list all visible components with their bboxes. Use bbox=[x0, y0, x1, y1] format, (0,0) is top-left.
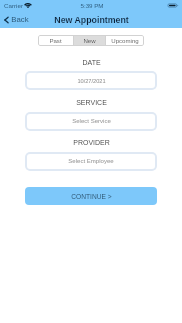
button[interactable]: CONTINUE > bbox=[25, 187, 157, 205]
staticText: New bbox=[83, 37, 96, 44]
staticText: Past bbox=[49, 37, 62, 44]
staticText: Carrier bbox=[4, 2, 23, 9]
button[interactable]: Back bbox=[2, 13, 31, 26]
staticText: PROVIDER bbox=[73, 139, 110, 147]
button[interactable]: Select Employee bbox=[25, 152, 157, 171]
button[interactable]: 10/27/2021 bbox=[25, 71, 157, 90]
staticText: CONTINUE > bbox=[71, 193, 112, 200]
staticText: DATE bbox=[82, 59, 101, 67]
staticText: 10/27/2021 bbox=[77, 78, 106, 84]
staticText: Upcoming bbox=[111, 37, 139, 44]
other: Battery bbox=[168, 3, 178, 8]
other: Back bbox=[4, 16, 9, 24]
staticText: 5:39 PM bbox=[80, 2, 104, 9]
button[interactable]: Past bbox=[38, 35, 73, 46]
staticText: Back bbox=[11, 15, 29, 24]
staticText: SERVICE bbox=[76, 99, 107, 107]
button[interactable]: Select Service bbox=[25, 112, 157, 131]
button[interactable]: New bbox=[74, 35, 105, 46]
staticText: Select Employee bbox=[68, 158, 114, 165]
staticText: New Appointment bbox=[54, 15, 129, 25]
staticText: Select Service bbox=[72, 118, 111, 125]
button[interactable]: Upcoming bbox=[106, 35, 144, 46]
other: Wi-Fi bbox=[25, 3, 31, 8]
